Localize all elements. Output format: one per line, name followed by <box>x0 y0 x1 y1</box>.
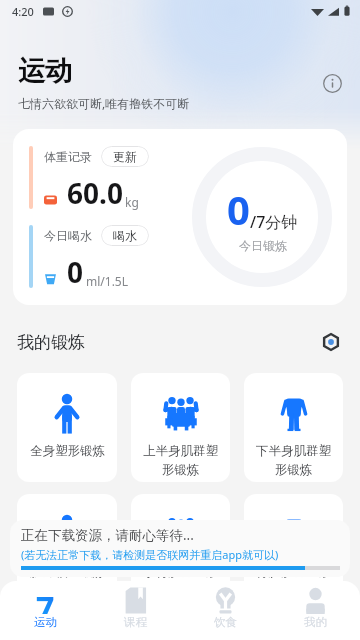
staticText: 今日锻炼 <box>239 238 287 253</box>
staticText: (若无法正常下载，请检测是否联网并重启app就可以) <box>21 547 279 562</box>
staticText: 七情六欲欲可断,唯有撸铁不可断 <box>18 95 190 111</box>
button[interactable]: 饮食 <box>180 581 270 633</box>
staticText: 0 <box>227 182 250 236</box>
button[interactable]: 下半身肌群塑 形锻炼 <box>244 373 343 482</box>
staticText: 0 <box>67 253 84 291</box>
button[interactable]: 腹部核心锻炼 <box>17 494 117 603</box>
staticText: 腹部核心锻炼 <box>30 564 105 580</box>
button[interactable]: 臀腿肌群塑形 锻炼 <box>244 494 343 603</box>
staticText: 我的锻炼 <box>17 332 85 353</box>
button[interactable]: Info <box>317 68 347 98</box>
button[interactable]: 更新 <box>101 146 149 167</box>
staticText: 臀腿肌群塑形 锻炼 <box>256 564 331 599</box>
staticText: 手臂肌群塑形 锻炼 <box>143 564 218 599</box>
button[interactable]: 喝水 <box>101 225 149 246</box>
staticText: 运动 <box>34 615 57 629</box>
staticText: 4:20 <box>12 4 34 19</box>
staticText: 课程 <box>124 615 147 629</box>
staticText: 喝水 <box>113 228 137 243</box>
button[interactable]: 课程 <box>90 581 180 633</box>
staticText: ml/1.5L <box>86 273 129 289</box>
staticText: 饮食 <box>214 615 237 629</box>
staticText: 下半身肌群塑 形锻炼 <box>256 443 331 478</box>
button[interactable]: 手臂肌群塑形 锻炼 <box>131 494 230 603</box>
button[interactable]: 我的 <box>270 581 360 633</box>
button[interactable]: 7 <box>0 581 90 633</box>
staticText: 上半身肌群塑 形锻炼 <box>143 443 218 478</box>
staticText: kg <box>125 194 139 210</box>
staticText: 7 <box>36 586 55 614</box>
button[interactable]: Settings <box>318 329 344 355</box>
staticText: 正在下载资源，请耐心等待... <box>21 526 194 544</box>
staticText: 全身塑形锻炼 <box>30 443 105 459</box>
staticText: 60.0 <box>67 174 123 212</box>
staticText: 运动 <box>18 54 72 88</box>
button[interactable]: 上半身肌群塑 形锻炼 <box>131 373 230 482</box>
button[interactable]: 全身塑形锻炼 <box>17 373 117 482</box>
staticText: 今日喝水 <box>44 228 92 243</box>
staticText: /7分钟 <box>250 211 298 233</box>
staticText: 我的 <box>304 615 327 629</box>
staticText: 体重记录 <box>44 149 92 164</box>
staticText: 更新 <box>113 149 137 164</box>
